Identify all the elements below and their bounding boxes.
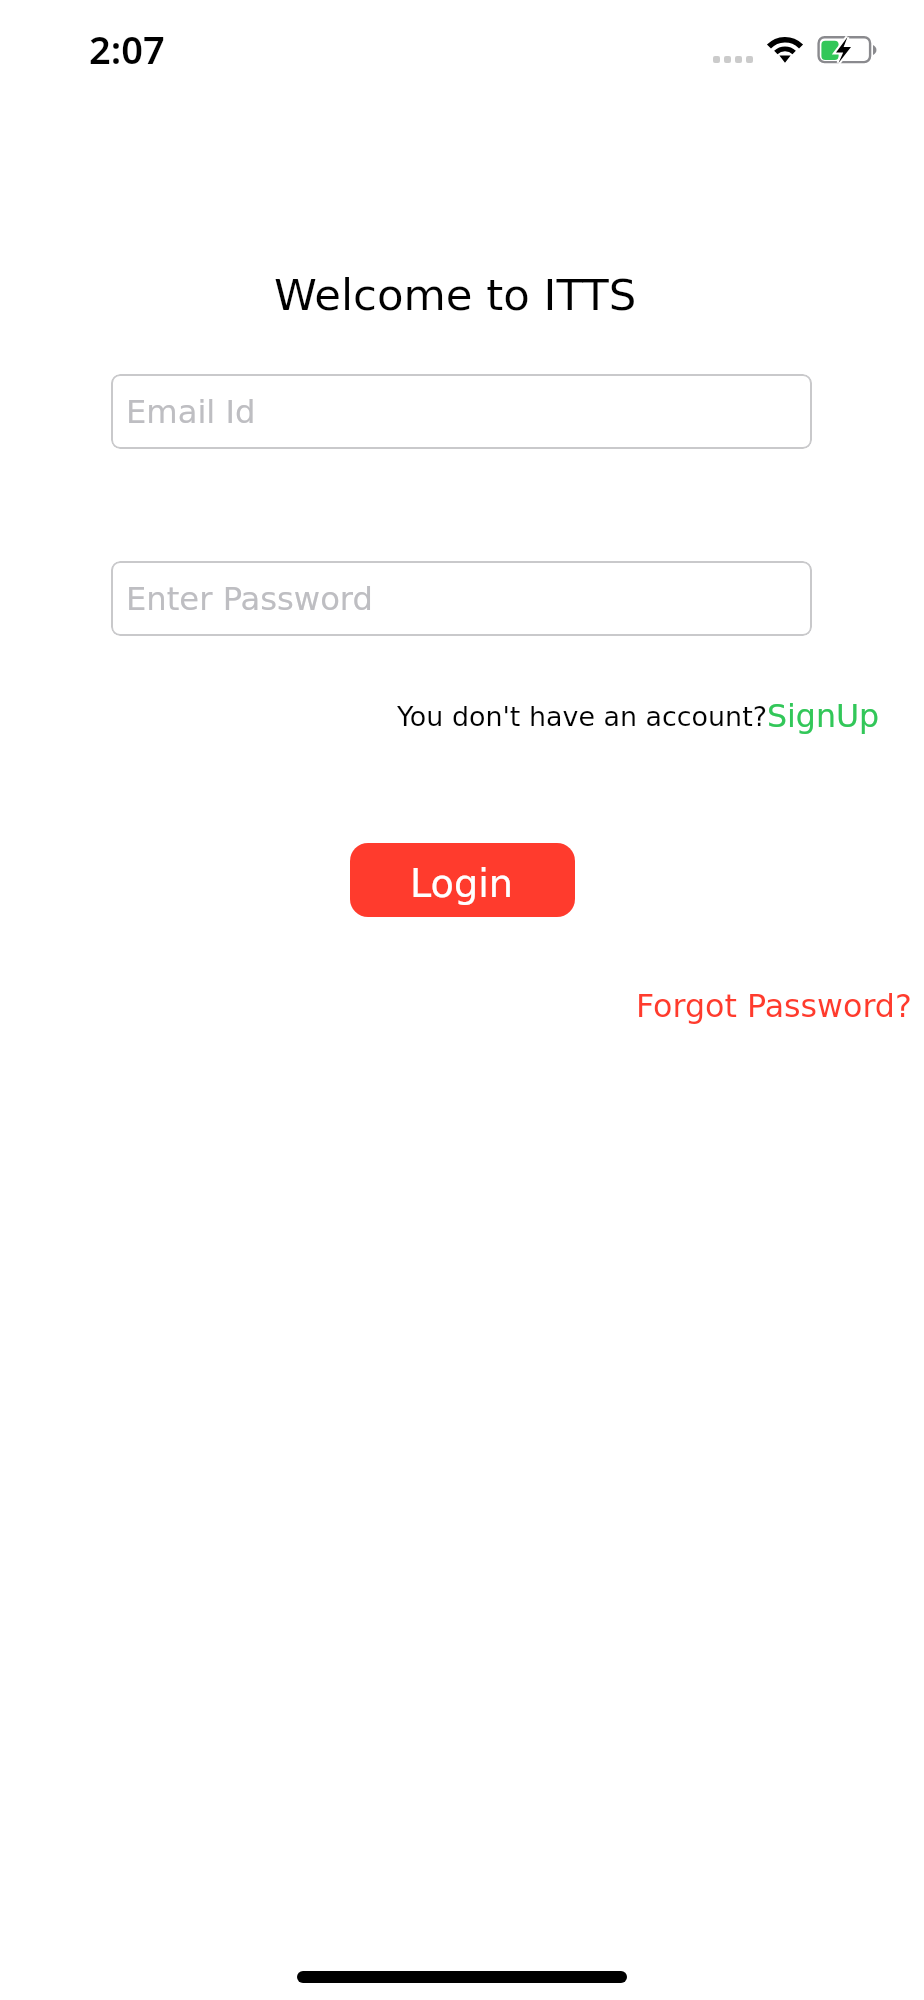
other: Wi-Fi (761, 30, 809, 66)
staticText: Login (410, 862, 514, 906)
button[interactable]: SignUp (767, 698, 880, 735)
staticText: Email Id (126, 393, 256, 430)
staticText: You don't have an account? (397, 701, 767, 732)
staticText: Welcome to ITTS (274, 270, 637, 321)
staticText: Forgot Password? (636, 988, 912, 1025)
button[interactable]: Email Id (111, 374, 812, 449)
button[interactable]: Login (350, 843, 575, 917)
button[interactable]: Forgot Password? (636, 988, 912, 1025)
staticText: Enter Password (126, 580, 373, 617)
button[interactable]: Enter Password (111, 561, 812, 636)
staticText: SignUp (767, 698, 880, 735)
other: Battery charging (816, 33, 880, 67)
staticText: 2:07 (89, 23, 165, 75)
